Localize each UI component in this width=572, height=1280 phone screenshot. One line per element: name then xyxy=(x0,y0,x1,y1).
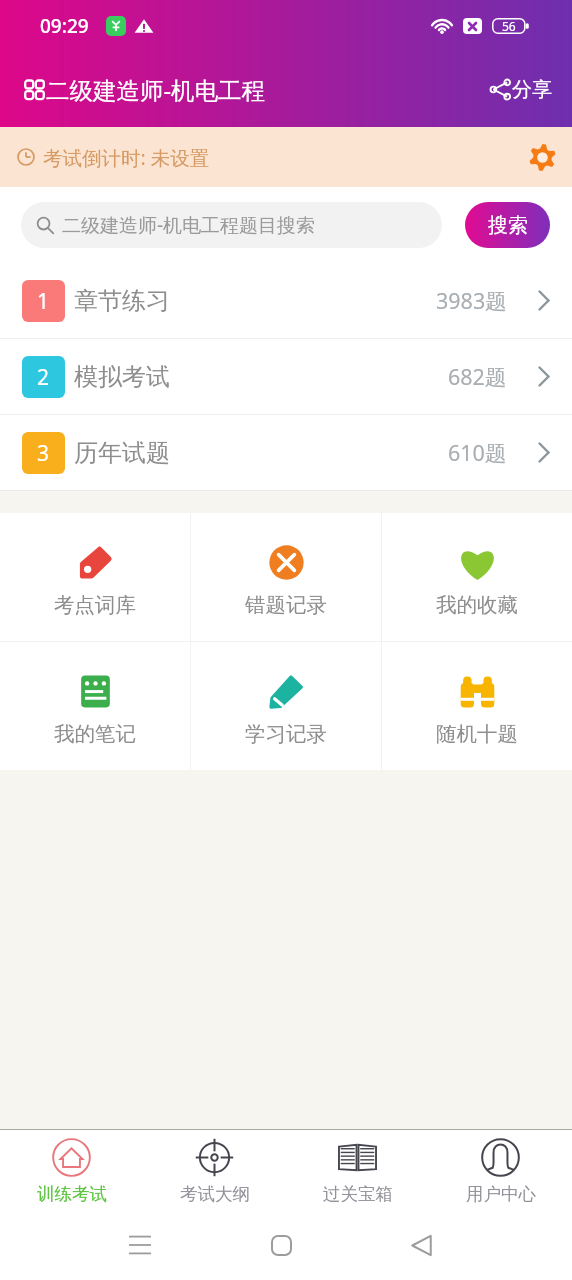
button[interactable]: 考试大纲 xyxy=(143,1130,286,1205)
staticText: 1 xyxy=(37,287,50,316)
staticText: 学习记录 xyxy=(245,721,327,747)
button[interactable]: 错题记录 xyxy=(191,513,381,641)
staticText: 模拟考试 xyxy=(74,362,170,392)
staticText: 过关宝箱 xyxy=(323,1183,393,1205)
button[interactable]: 分享 xyxy=(490,77,552,102)
staticText: 我的收藏 xyxy=(436,592,518,618)
staticText: 训练考试 xyxy=(37,1183,107,1205)
button[interactable]: 学习记录 xyxy=(191,642,381,770)
staticText: 2 xyxy=(37,363,50,392)
button[interactable]: 考点词库 xyxy=(0,513,190,641)
button[interactable]: 1 xyxy=(0,263,572,338)
staticText: 错题记录 xyxy=(245,592,327,618)
staticText: 考点词库 xyxy=(54,592,136,618)
staticText: 56 xyxy=(502,18,516,34)
staticText: 我的笔记 xyxy=(54,721,136,747)
button[interactable]: 3 xyxy=(0,415,572,490)
staticText: 二级建造师-机电工程题目搜索 xyxy=(62,212,316,238)
button[interactable]: 训练考试 xyxy=(0,1130,143,1205)
button[interactable]: 2 xyxy=(0,339,572,414)
staticText: 二级建造师-机电工程 xyxy=(46,74,266,106)
button[interactable]: 二级建造师-机电工程题目搜索 xyxy=(21,202,442,248)
staticText: 分享 xyxy=(512,77,552,102)
staticText: 历年试题 xyxy=(74,438,170,468)
button[interactable]: 设置 xyxy=(524,139,560,175)
staticText: 3 xyxy=(37,439,50,468)
staticText: 610题 xyxy=(448,438,507,467)
button[interactable]: 我的笔记 xyxy=(0,642,190,770)
button[interactable]: 用户中心 xyxy=(429,1130,572,1205)
staticText: 09:29 xyxy=(40,13,89,39)
staticText: 随机十题 xyxy=(436,721,518,747)
button[interactable]: 随机十题 xyxy=(382,642,572,770)
staticText: 用户中心 xyxy=(466,1183,536,1205)
staticText: 搜索 xyxy=(488,213,528,238)
staticText: 3983题 xyxy=(436,286,507,315)
staticText: 考试大纲 xyxy=(180,1183,250,1205)
staticText: 章节练习 xyxy=(74,286,170,316)
button[interactable]: 我的收藏 xyxy=(382,513,572,641)
button[interactable]: 过关宝箱 xyxy=(286,1130,429,1205)
staticText: 考试倒计时: 未设置 xyxy=(43,144,210,171)
button[interactable]: 搜索 xyxy=(465,202,550,248)
staticText: 682题 xyxy=(448,362,507,391)
